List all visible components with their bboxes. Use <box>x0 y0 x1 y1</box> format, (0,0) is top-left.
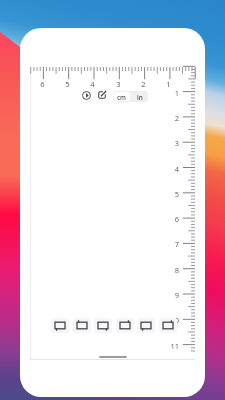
staticText: 8 <box>174 265 179 275</box>
staticText: in <box>137 93 143 101</box>
staticText: 3 <box>174 138 179 148</box>
staticText: 4 <box>174 164 179 174</box>
staticText: 4 <box>90 79 95 89</box>
staticText: cm <box>117 93 127 101</box>
staticText: 5 <box>174 189 179 199</box>
staticText: 1 <box>174 88 179 98</box>
staticText: 1 <box>166 79 171 89</box>
staticText: 3 <box>116 79 121 89</box>
button[interactable]: Object 6 <box>159 318 177 333</box>
staticText: 7 <box>174 239 179 249</box>
staticText: 6 <box>174 214 179 224</box>
staticText: 6 <box>40 79 45 89</box>
button[interactable]: Object 4 <box>116 318 134 333</box>
staticText: 2 <box>141 79 146 89</box>
button[interactable]: Edit <box>93 86 111 104</box>
staticText: 2 <box>174 113 179 123</box>
staticText: 11 <box>170 341 179 351</box>
staticText: 10 <box>170 315 179 325</box>
staticText: 9 <box>174 290 179 300</box>
button[interactable]: cm <box>114 92 130 101</box>
button[interactable]: Object 3 <box>94 318 112 333</box>
button[interactable]: Object 5 <box>137 318 155 333</box>
button[interactable]: Object 2 <box>73 318 91 333</box>
staticText: 5 <box>65 79 70 89</box>
button[interactable]: History <box>77 86 95 104</box>
button[interactable]: in <box>131 91 148 102</box>
button[interactable]: Object 1 <box>51 318 69 333</box>
